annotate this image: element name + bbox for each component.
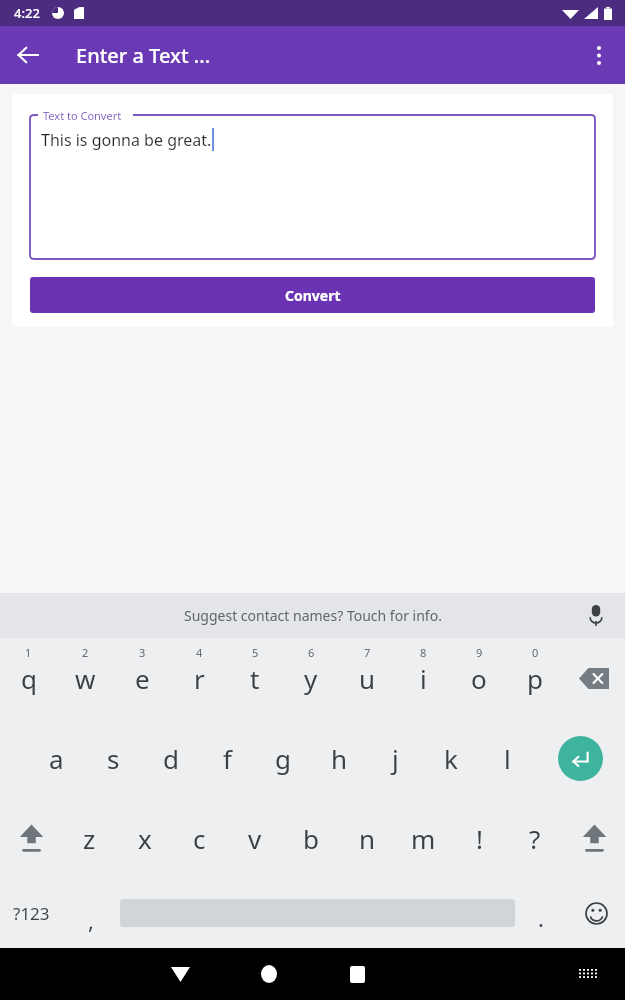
button[interactable]: Recent apps bbox=[313, 948, 401, 1000]
staticText: f bbox=[223, 741, 232, 776]
button[interactable]: Shift bbox=[563, 798, 625, 878]
staticText: t bbox=[250, 661, 260, 696]
button[interactable]: ? bbox=[507, 798, 563, 878]
button[interactable]: j bbox=[367, 718, 423, 798]
staticText: 5 bbox=[252, 645, 259, 660]
button[interactable]: Voice input bbox=[567, 593, 625, 638]
button[interactable]: z bbox=[62, 798, 117, 878]
staticText: h bbox=[331, 741, 348, 776]
staticText: 7 bbox=[364, 645, 371, 660]
button[interactable]: Space bbox=[120, 878, 515, 948]
staticText: w bbox=[75, 661, 96, 696]
button[interactable]: Emoji bbox=[567, 878, 625, 948]
button[interactable]: g bbox=[255, 718, 311, 798]
staticText: o bbox=[471, 661, 487, 696]
staticText: q bbox=[21, 661, 37, 696]
staticText: e bbox=[135, 661, 150, 696]
button[interactable]: 7 bbox=[339, 638, 395, 718]
button[interactable]: Switch keyboard bbox=[550, 948, 625, 1000]
button[interactable]: Backspace bbox=[563, 638, 625, 718]
staticText: 2 bbox=[82, 645, 89, 660]
button[interactable]: b bbox=[283, 798, 339, 878]
button[interactable]: Text to Convert bbox=[30, 108, 595, 260]
button[interactable]: Navigate up bbox=[0, 27, 56, 83]
button[interactable]: x bbox=[117, 798, 172, 878]
button[interactable]: k bbox=[423, 718, 479, 798]
staticText: s bbox=[107, 741, 120, 776]
staticText: y bbox=[304, 661, 318, 696]
button[interactable]: a bbox=[28, 718, 85, 798]
button[interactable]: m bbox=[395, 798, 451, 878]
button[interactable]: c bbox=[172, 798, 227, 878]
button[interactable]: Symbols bbox=[0, 878, 62, 948]
staticText: 9 bbox=[476, 645, 483, 660]
staticText: p bbox=[527, 661, 543, 696]
staticText: 4 bbox=[196, 645, 203, 660]
staticText: , bbox=[88, 905, 94, 935]
staticText: ?123 bbox=[13, 902, 50, 925]
button[interactable]: h bbox=[311, 718, 367, 798]
button[interactable]: d bbox=[142, 718, 199, 798]
button[interactable]: 0 bbox=[507, 638, 563, 718]
staticText: k bbox=[444, 741, 458, 776]
button[interactable]: ! bbox=[451, 798, 507, 878]
button[interactable]: Home bbox=[225, 948, 313, 1000]
button[interactable]: 6 bbox=[283, 638, 339, 718]
button[interactable]: , bbox=[62, 878, 120, 948]
button[interactable]: s bbox=[85, 718, 142, 798]
staticText: z bbox=[83, 821, 96, 856]
button[interactable]: Suggest contact names? Touch for info. bbox=[0, 593, 625, 638]
button[interactable]: More options bbox=[573, 29, 625, 81]
staticText: u bbox=[359, 661, 376, 696]
button[interactable]: 4 bbox=[171, 638, 227, 718]
button[interactable]: f bbox=[199, 718, 255, 798]
button[interactable]: Shift bbox=[0, 798, 62, 878]
button[interactable]: n bbox=[339, 798, 395, 878]
staticText: c bbox=[193, 821, 206, 856]
staticText: ! bbox=[476, 821, 483, 856]
staticText: ? bbox=[529, 821, 541, 856]
staticText: j bbox=[392, 741, 399, 776]
staticText: v bbox=[248, 821, 262, 856]
staticText: Enter a Text ... bbox=[76, 42, 211, 69]
button[interactable]: l bbox=[479, 718, 535, 798]
button[interactable]: . bbox=[515, 878, 567, 948]
staticText: b bbox=[303, 821, 319, 856]
button[interactable]: 9 bbox=[451, 638, 507, 718]
staticText: . bbox=[538, 903, 544, 933]
staticText: 0 bbox=[532, 645, 539, 660]
button[interactable]: 8 bbox=[395, 638, 451, 718]
button[interactable]: v bbox=[227, 798, 283, 878]
staticText: Suggest contact names? Touch for info. bbox=[184, 606, 442, 625]
staticText: a bbox=[49, 741, 64, 776]
staticText: r bbox=[194, 661, 205, 696]
staticText: 3 bbox=[139, 645, 146, 660]
staticText: m bbox=[411, 821, 436, 856]
staticText: 4:22 bbox=[14, 4, 40, 22]
staticText: Convert bbox=[285, 286, 341, 305]
button[interactable]: 5 bbox=[227, 638, 283, 718]
button[interactable]: 2 bbox=[57, 638, 114, 718]
staticText: l bbox=[504, 741, 511, 776]
staticText: x bbox=[138, 821, 152, 856]
staticText: 1 bbox=[25, 645, 32, 660]
staticText: d bbox=[163, 741, 179, 776]
staticText: 8 bbox=[420, 645, 427, 660]
button[interactable]: Back bbox=[135, 948, 225, 1000]
staticText: n bbox=[359, 821, 376, 856]
button[interactable]: 1 bbox=[0, 638, 57, 718]
staticText: Text to Convert bbox=[43, 108, 122, 123]
staticText: g bbox=[275, 741, 291, 776]
staticText: 6 bbox=[308, 645, 315, 660]
staticText: i bbox=[420, 661, 427, 696]
button[interactable]: Convert bbox=[30, 277, 595, 313]
staticText: This is gonna be great. bbox=[41, 129, 212, 151]
button[interactable]: Enter bbox=[535, 718, 625, 798]
button[interactable]: 3 bbox=[114, 638, 171, 718]
